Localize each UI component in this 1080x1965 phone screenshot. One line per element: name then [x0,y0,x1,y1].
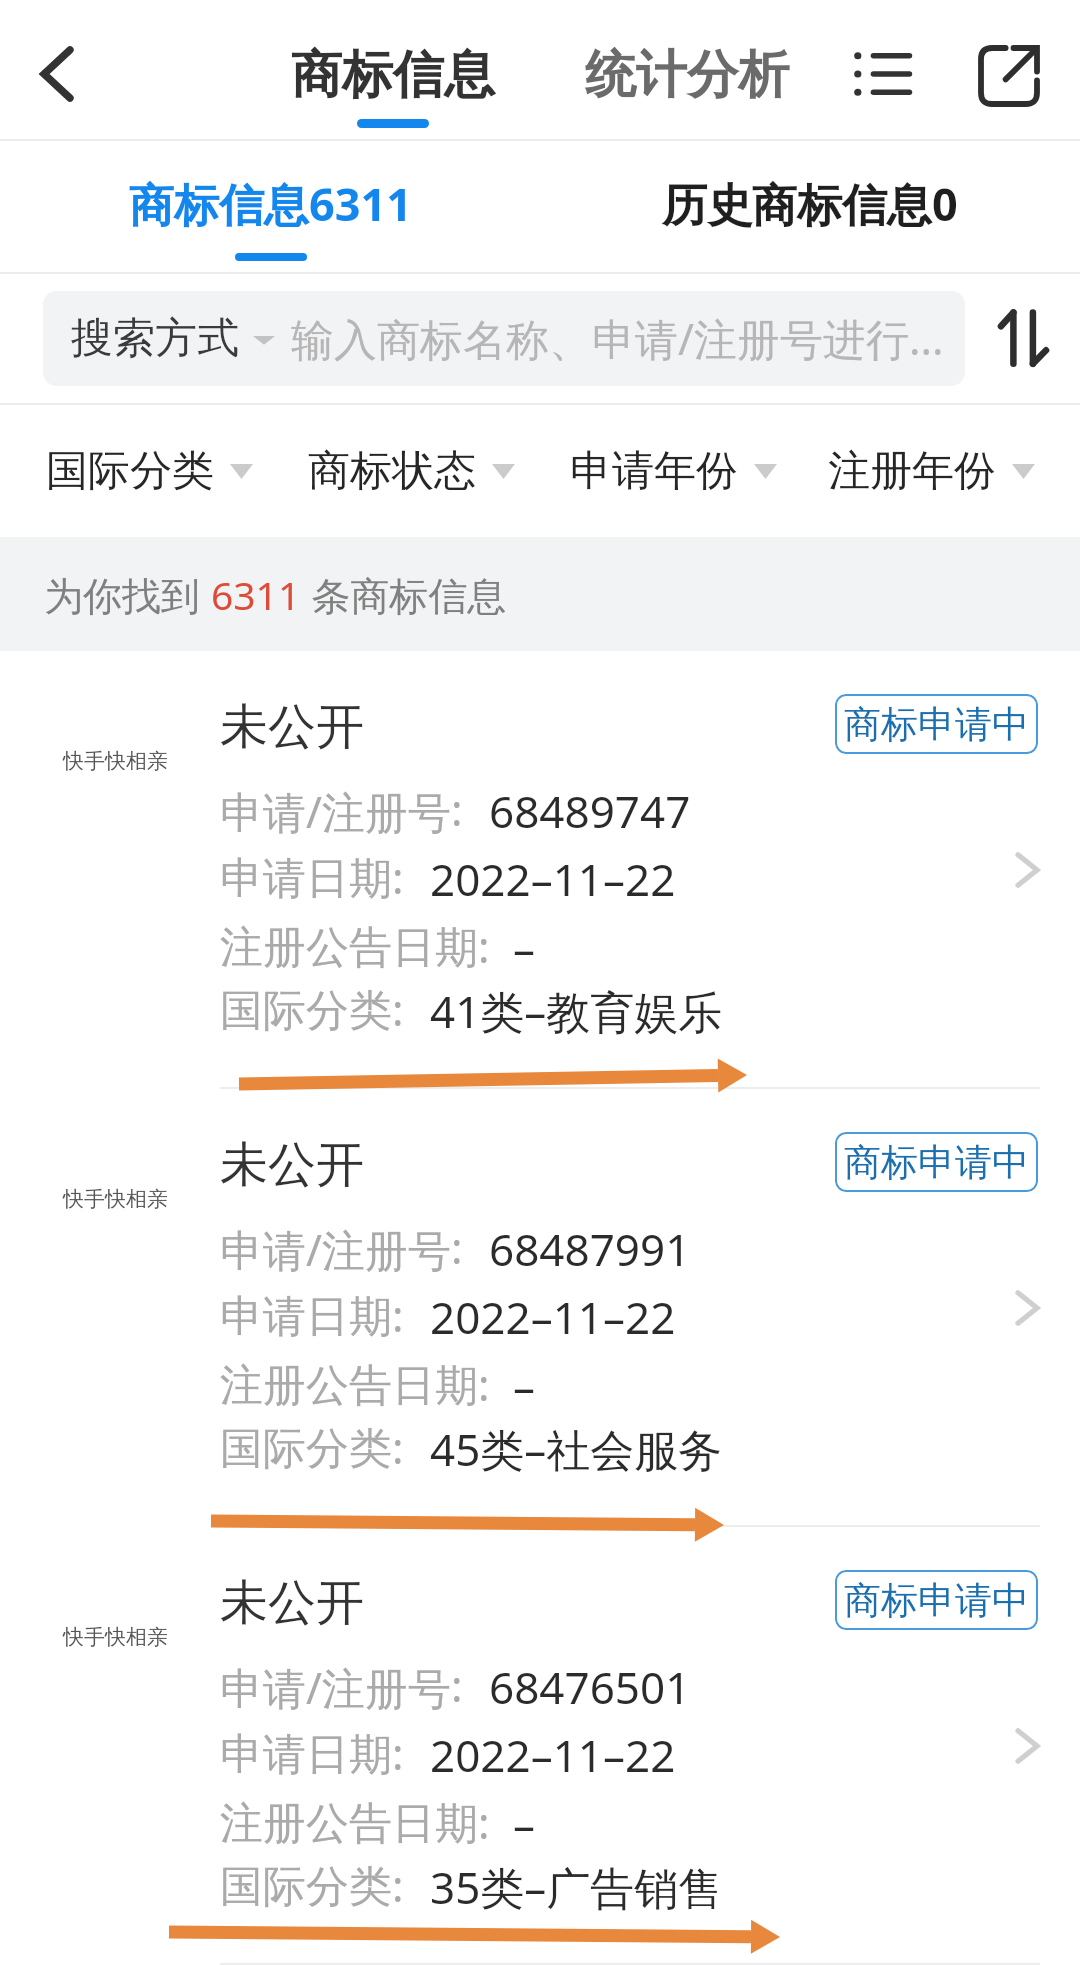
staticText: : [392,1418,404,1477]
staticText: 申请年份 [570,445,738,498]
staticText: 商标信息 [291,43,495,107]
button[interactable]: 商标申请中 [835,694,1038,754]
staticText: 注册公告日期 [220,921,478,975]
staticText: 注册公告日期 [220,1797,478,1851]
staticText: 申请/注册号 [220,1658,451,1717]
staticText: 注册公告日期 [220,1359,478,1413]
button[interactable]: 商标申请中 [835,1132,1038,1192]
button[interactable]: Sort [985,290,1061,386]
button[interactable]: 国际分类 [46,405,253,537]
staticText: 申请日期 [220,1728,392,1782]
button[interactable]: 统计分析 [585,43,789,107]
staticText: : [451,1218,463,1277]
staticText: 35类–广告销售 [430,1857,723,1917]
staticText: 2022–11–22 [430,1287,676,1347]
button[interactable]: Back [12,29,102,119]
staticText: 6311 [211,568,301,621]
button[interactable]: 搜索方式 [71,291,949,386]
staticText: 历史商标信息0 [662,173,958,234]
staticText: 快手快相亲 [63,1186,168,1212]
staticText: : [392,1724,404,1783]
staticText: : [392,848,404,907]
staticText: 输入商标名称、申请/注册号进行... [291,309,944,368]
button[interactable]: 快手快相亲 [0,651,1080,1089]
staticText: : [478,1793,490,1852]
staticText: – [513,1794,535,1854]
button[interactable]: 快手快相亲 [0,1527,1080,1965]
staticText: 为你找到 [44,568,211,621]
button[interactable]: 注册年份 [828,405,1035,537]
staticText: : [392,1286,404,1345]
staticText: 国际分类 [46,445,214,498]
button[interactable]: Share [963,30,1055,122]
staticText: 国际分类 [220,984,392,1038]
staticText: : [392,1856,404,1915]
staticText: 商标信息6311 [129,173,412,234]
staticText: : [392,980,404,1039]
staticText: 商标申请中 [844,701,1029,748]
staticText: 条商标信息 [301,568,507,621]
staticText: 2022–11–22 [430,1725,676,1785]
staticText: 商标状态 [308,445,476,498]
staticText: 申请/注册号 [220,1220,451,1279]
button[interactable]: List view [839,32,923,116]
staticText: 商标申请中 [844,1139,1029,1186]
button[interactable]: 商标状态 [308,405,515,537]
staticText: 未公开 [220,697,364,757]
button[interactable]: 快手快相亲 [0,1089,1080,1527]
button[interactable]: 历史商标信息0 [540,141,1080,272]
staticText: : [478,917,490,976]
staticText: 国际分类 [220,1860,392,1914]
staticText: 未公开 [220,1135,364,1195]
button[interactable]: 商标申请中 [835,1570,1038,1630]
staticText: 68487991 [489,1219,691,1279]
staticText: 快手快相亲 [63,1624,168,1650]
staticText: 未公开 [220,1573,364,1633]
staticText: – [513,918,535,978]
staticText: : [478,1355,490,1414]
button[interactable]: 申请年份 [570,405,777,537]
staticText: 申请/注册号 [220,782,451,841]
staticText: 申请日期 [220,1290,392,1344]
button[interactable]: 商标信息 [291,43,495,128]
staticText: : [451,780,463,839]
staticText: 2022–11–22 [430,849,676,909]
button[interactable]: 商标信息6311 [0,141,540,272]
staticText: 68476501 [489,1657,691,1717]
staticText: 商标申请中 [844,1577,1029,1624]
staticText: 申请日期 [220,852,392,906]
staticText: 45类–社会服务 [430,1419,723,1479]
staticText: 搜索方式 [71,312,239,365]
staticText: 国际分类 [220,1422,392,1476]
staticText: 注册年份 [828,445,996,498]
staticText: 快手快相亲 [63,748,168,774]
staticText: 68489747 [489,781,691,841]
staticText: : [451,1656,463,1715]
staticText: 41类–教育娱乐 [430,981,723,1041]
staticText: – [513,1356,535,1416]
